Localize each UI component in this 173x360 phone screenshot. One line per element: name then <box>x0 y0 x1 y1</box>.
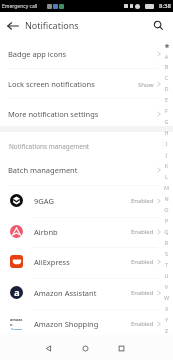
staticText: N <box>160 195 173 202</box>
staticText: Airbnb <box>34 227 58 237</box>
staticText: K <box>160 162 173 169</box>
staticText: Show <box>138 80 154 88</box>
button[interactable]: Back <box>2 15 23 36</box>
staticText: Amazon Shopping <box>34 319 99 329</box>
button[interactable]: AliExpress <box>0 246 173 277</box>
button[interactable]: Badge app icons <box>0 39 173 69</box>
staticText: Enabled <box>131 197 154 205</box>
button[interactable]: More notification settings <box>0 99 173 129</box>
staticText: AliExpress <box>34 257 70 267</box>
staticText: Notifications <box>25 19 79 31</box>
button[interactable]: Airbnb <box>0 216 173 247</box>
staticText: Amazon Assistant <box>34 288 97 298</box>
staticText: More notification settings <box>8 109 99 119</box>
button[interactable]: a <box>0 277 173 308</box>
staticText: Q <box>160 228 173 235</box>
staticText: Enabled <box>131 289 154 297</box>
button[interactable]: Lock screen notifications <box>0 69 173 99</box>
staticText: E <box>160 96 173 103</box>
staticText: W <box>160 294 173 301</box>
staticText: Lock screen notifications <box>8 79 95 89</box>
staticText: 8:38 <box>159 2 171 10</box>
staticText: H <box>160 129 173 136</box>
staticText: R <box>160 239 173 246</box>
button[interactable]: Search <box>148 15 169 36</box>
staticText: Enabled <box>131 258 154 266</box>
staticText: Y <box>160 316 173 323</box>
staticText: V <box>160 283 173 290</box>
staticText: D <box>160 85 173 92</box>
staticText: 9GAG <box>34 196 54 206</box>
staticText: Notifications management <box>9 142 90 151</box>
staticText: Enabled <box>131 320 154 328</box>
staticText: I <box>160 140 173 147</box>
button[interactable]: Batch management <box>0 155 173 185</box>
staticText: amazon <box>10 317 23 327</box>
staticText: Badge app icons <box>8 49 67 59</box>
staticText: Emergency call <box>2 3 38 10</box>
staticText: S <box>160 250 173 257</box>
staticText: a <box>14 286 20 299</box>
staticText: Batch management <box>8 165 78 175</box>
staticText: F <box>160 107 173 114</box>
staticText: J <box>160 151 173 158</box>
staticText: M <box>160 184 173 191</box>
staticText: O <box>160 206 173 213</box>
staticText: P <box>160 217 173 224</box>
button[interactable]: Recent apps <box>111 338 131 358</box>
staticText: X <box>160 305 173 312</box>
staticText: L <box>160 173 173 180</box>
button[interactable]: Home <box>75 338 95 358</box>
staticText: T <box>160 261 173 268</box>
staticText: U <box>160 272 173 279</box>
staticText: A <box>160 53 173 60</box>
staticText: Z <box>160 327 173 334</box>
staticText: C <box>160 74 173 81</box>
staticText: Enabled <box>131 228 154 236</box>
button[interactable]: amazon <box>0 308 173 339</box>
button[interactable]: 9GAG <box>0 185 173 216</box>
button[interactable]: Back <box>38 338 58 358</box>
staticText: G <box>160 118 173 125</box>
staticText: B <box>160 63 173 70</box>
